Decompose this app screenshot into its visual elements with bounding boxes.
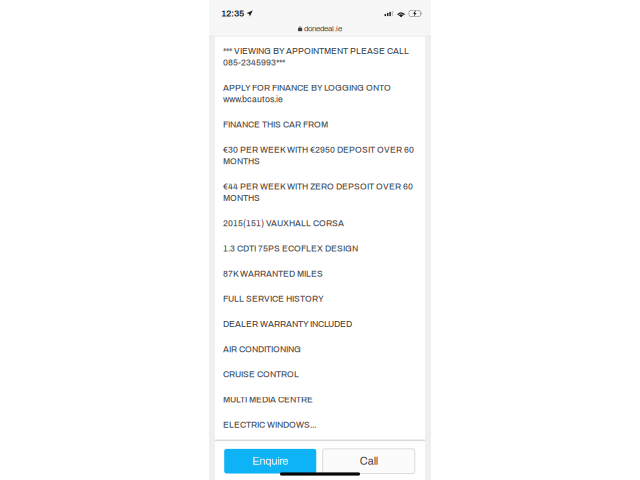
staticText: FULL SERVICE HISTORY xyxy=(223,294,324,304)
staticText: Call xyxy=(360,455,378,467)
staticText: FINANCE THIS CAR FROM xyxy=(223,120,328,129)
staticText: €44 PER WEEK WITH ZERO DEPSOIT OVER 60 M… xyxy=(223,182,413,203)
staticText: 1.3 CDTI 75PS ECOFLEX DESIGN xyxy=(223,244,358,253)
button[interactable]: Enquire xyxy=(224,449,316,473)
staticText: DEALER WARRANTY INCLUDED xyxy=(223,319,352,329)
staticText: *** VIEWING BY APPOINTMENT PLEASE CALL 0… xyxy=(223,46,409,67)
staticText: MULTI MEDIA CENTRE xyxy=(223,395,313,404)
staticText: 12:35 xyxy=(221,8,244,18)
staticText: 87K WARRANTED MILES xyxy=(223,269,323,278)
staticText: donedeal.ie xyxy=(304,24,342,33)
staticText: AIR CONDITIONING xyxy=(223,345,301,354)
staticText: APPLY FOR FINANCE BY LOGGING ONTO www.bc… xyxy=(223,83,391,104)
staticText: €30 PER WEEK WITH €2950 DEPOSIT OVER 60 … xyxy=(223,145,414,166)
button[interactable]: Call xyxy=(323,449,415,473)
staticText: ELECTRIC WINDOWS... xyxy=(223,420,316,429)
staticText: CRUISE CONTROL xyxy=(223,370,299,379)
staticText: Enquire xyxy=(252,455,288,467)
staticText: 2015(151) VAUXHALL CORSA xyxy=(223,219,344,228)
